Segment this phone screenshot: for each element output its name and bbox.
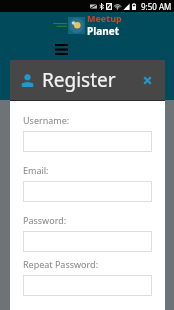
- staticText: Meetup: [87, 12, 122, 24]
- button[interactable]: Password:: [23, 231, 152, 252]
- staticText: Register: [42, 67, 116, 93]
- staticText: Repeat Password:: [23, 258, 99, 270]
- staticText: Email:: [23, 164, 49, 176]
- button[interactable]: Close: [137, 70, 157, 90]
- button[interactable]: Username:: [23, 131, 152, 152]
- button[interactable]: Account: [16, 69, 38, 91]
- button[interactable]: Meetup Planet logo: [69, 18, 84, 33]
- staticText: Username:: [23, 114, 70, 126]
- staticText: Password:: [23, 214, 67, 226]
- button[interactable]: Repeat Password:: [23, 275, 152, 296]
- button[interactable]: Menu: [50, 38, 72, 60]
- staticText: 9:50 AM: [141, 1, 172, 12]
- staticText: Planet: [87, 24, 119, 38]
- button[interactable]: Email:: [23, 181, 152, 202]
